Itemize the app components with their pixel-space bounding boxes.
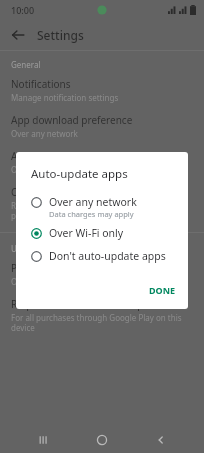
- staticText: Over Wi-Fi only: [49, 226, 124, 240]
- button[interactable]: Notifications: [0, 76, 204, 104]
- staticText: Auto-update apps: [11, 149, 96, 163]
- staticText: Manage notification settings: [11, 92, 119, 103]
- staticText: Over Wi-Fi only: [11, 164, 68, 175]
- staticText: Clear local search history: [11, 185, 129, 199]
- staticText: Data charges may apply: [49, 209, 134, 219]
- staticText: App download preference: [11, 113, 133, 127]
- staticText: Notifications: [11, 77, 71, 91]
- button[interactable]: Parental controls: [0, 260, 204, 288]
- staticText: Parental controls: [11, 261, 91, 275]
- staticText: Off: [11, 276, 23, 287]
- staticText: For all purchases through Google Play on…: [11, 312, 193, 333]
- button[interactable]: DONE: [137, 280, 188, 300]
- button[interactable]: Home: [87, 427, 117, 453]
- staticText: 10:00: [11, 4, 35, 16]
- staticText: Settings: [37, 27, 84, 43]
- button[interactable]: Recents: [29, 427, 59, 453]
- staticText: Over any network: [11, 128, 78, 139]
- button[interactable]: Clear local search history: [0, 184, 204, 222]
- staticText: Over any network: [49, 195, 137, 209]
- button[interactable]: Auto-update apps: [0, 148, 204, 176]
- staticText: General: [11, 59, 41, 70]
- staticText: DONE: [149, 284, 176, 296]
- staticText: Auto-update apps: [31, 166, 128, 182]
- button[interactable]: Require authentication for purchases: [0, 296, 204, 334]
- button[interactable]: Over Wi-Fi only: [16, 224, 188, 247]
- staticText: Require authentication for purchases: [11, 297, 186, 311]
- button[interactable]: App download preference: [0, 112, 204, 140]
- staticText: Remove history in your wishlist, the Bet…: [11, 200, 193, 221]
- button[interactable]: Don't auto-update apps: [16, 247, 188, 270]
- button[interactable]: Back: [11, 28, 25, 42]
- button[interactable]: Back: [146, 427, 176, 453]
- staticText: User controls: [11, 243, 61, 254]
- button[interactable]: Over any network: [16, 193, 188, 224]
- staticText: Don't auto-update apps: [49, 249, 166, 263]
